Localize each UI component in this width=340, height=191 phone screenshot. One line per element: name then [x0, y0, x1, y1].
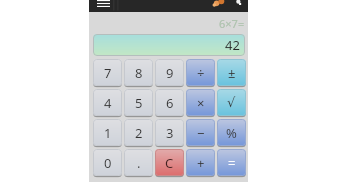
- button[interactable]: 2: [124, 119, 153, 146]
- staticText: %: [226, 124, 237, 142]
- button[interactable]: 6: [155, 89, 184, 116]
- button[interactable]: 3: [155, 119, 184, 146]
- other: Menu: [97, 0, 110, 7]
- button[interactable]: 5: [124, 89, 153, 116]
- staticText: 9: [166, 64, 174, 82]
- button[interactable]: 0: [93, 149, 122, 176]
- staticText: ÷: [197, 64, 205, 82]
- staticText: 42: [225, 36, 240, 54]
- staticText: 6: [166, 94, 174, 112]
- button[interactable]: 9: [155, 59, 184, 86]
- staticText: +: [197, 154, 205, 172]
- button[interactable]: −: [186, 119, 215, 146]
- staticText: ±: [228, 64, 236, 82]
- staticText: 1: [104, 124, 112, 142]
- staticText: 3: [166, 124, 174, 142]
- staticText: √: [227, 95, 236, 110]
- button[interactable]: 1: [93, 119, 122, 146]
- staticText: ×: [197, 94, 205, 112]
- button[interactable]: =: [217, 149, 246, 176]
- button[interactable]: 8: [124, 59, 153, 86]
- staticText: 0: [104, 154, 112, 172]
- button[interactable]: C: [155, 149, 184, 176]
- button[interactable]: 4: [93, 89, 122, 116]
- staticText: .: [137, 154, 141, 172]
- staticText: 8: [135, 64, 143, 82]
- button[interactable]: +: [186, 149, 215, 176]
- staticText: 4: [104, 94, 112, 112]
- staticText: 6×7=: [219, 16, 245, 31]
- button[interactable]: .: [124, 149, 153, 176]
- button[interactable]: ×: [186, 89, 215, 116]
- staticText: −: [197, 124, 205, 142]
- staticText: 7: [104, 64, 112, 82]
- staticText: C: [165, 154, 174, 172]
- button[interactable]: ±: [217, 59, 246, 86]
- button[interactable]: %: [217, 119, 246, 146]
- button[interactable]: √: [217, 89, 246, 116]
- staticText: 5: [135, 94, 143, 112]
- button[interactable]: ÷: [186, 59, 215, 86]
- staticText: 2: [135, 124, 143, 142]
- button[interactable]: 7: [93, 59, 122, 86]
- staticText: =: [228, 154, 236, 172]
